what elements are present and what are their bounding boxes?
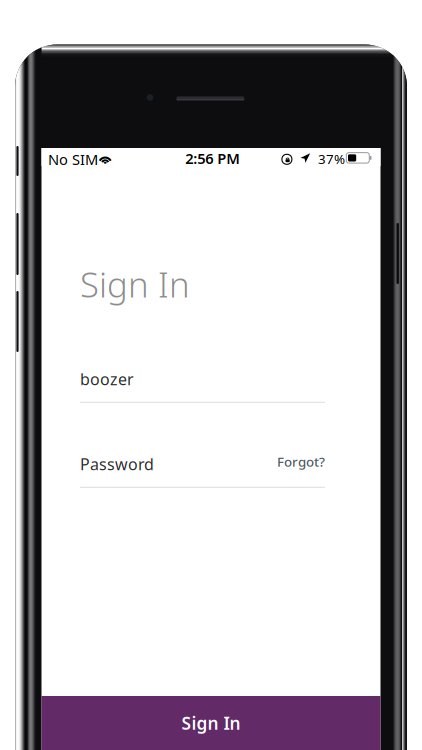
staticText: Sign In — [80, 261, 190, 307]
button[interactable]: Forgot? — [277, 454, 325, 468]
staticText: No SIM — [48, 150, 98, 169]
staticText: Password — [80, 453, 154, 475]
staticText: 2:56 PM — [185, 148, 240, 168]
staticText: Sign In — [181, 711, 240, 734]
staticText: 37% — [318, 150, 345, 168]
staticText: boozer — [80, 368, 134, 390]
button[interactable]: Sign In — [41, 696, 380, 750]
staticText: Forgot? — [277, 453, 325, 470]
